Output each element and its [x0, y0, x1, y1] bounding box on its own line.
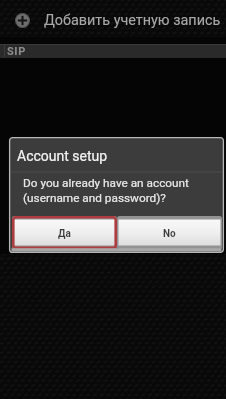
other: Добавить учетную запись	[15, 13, 30, 28]
button[interactable]: No	[117, 216, 222, 249]
staticText: Account setup	[17, 148, 108, 164]
button[interactable]: Да	[12, 216, 117, 249]
staticText: Да	[58, 228, 71, 240]
staticText: Do you already have an account (username…	[23, 176, 189, 204]
staticText: Добавить учетную запись	[44, 12, 221, 29]
staticText: No	[163, 228, 176, 240]
button[interactable]: Добавить учетную запись	[0, 0, 226, 36]
staticText: SIP	[7, 45, 26, 58]
